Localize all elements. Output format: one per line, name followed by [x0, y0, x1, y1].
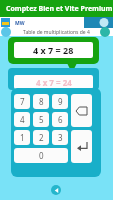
- button[interactable]: Enter: [71, 130, 92, 163]
- staticText: Table de multiplications de 4: [23, 29, 90, 36]
- staticText: 8: [39, 96, 44, 107]
- staticText: Comptez Bien et Vite Premium: [6, 4, 113, 14]
- button[interactable]: 2: [33, 130, 49, 145]
- staticText: 2: [39, 132, 44, 143]
- staticText: MW: [15, 20, 25, 27]
- staticText: 5: [39, 114, 44, 125]
- button[interactable]: 9: [52, 94, 68, 109]
- staticText: 1: [20, 132, 25, 143]
- button[interactable]: Comptez Bien et Vite Premium: [0, 0, 113, 17]
- button[interactable]: 4: [14, 112, 30, 127]
- staticText: 3: [58, 132, 63, 143]
- button[interactable]: 1: [14, 130, 30, 145]
- staticText: 7: [20, 96, 25, 107]
- button[interactable]: 6: [52, 112, 68, 127]
- staticText: 6: [58, 114, 63, 125]
- button[interactable]: Table de multiplications de 4: [0, 28, 113, 36]
- button[interactable]: 7: [14, 94, 30, 109]
- button[interactable]: 0: [14, 148, 68, 163]
- staticText: 9: [58, 96, 63, 107]
- staticText: 4 x 7 = 28: [33, 44, 74, 56]
- button[interactable]: 3: [52, 130, 68, 145]
- button[interactable]: 8: [33, 94, 49, 109]
- staticText: 0: [39, 150, 44, 161]
- button[interactable]: 5: [33, 112, 49, 127]
- staticText: 4: [20, 114, 25, 125]
- button[interactable]: Backspace: [71, 94, 92, 127]
- staticText: 4 x 7 = 24: [36, 77, 72, 88]
- button[interactable]: MW: [0, 17, 113, 28]
- button[interactable]: Back: [51, 185, 61, 195]
